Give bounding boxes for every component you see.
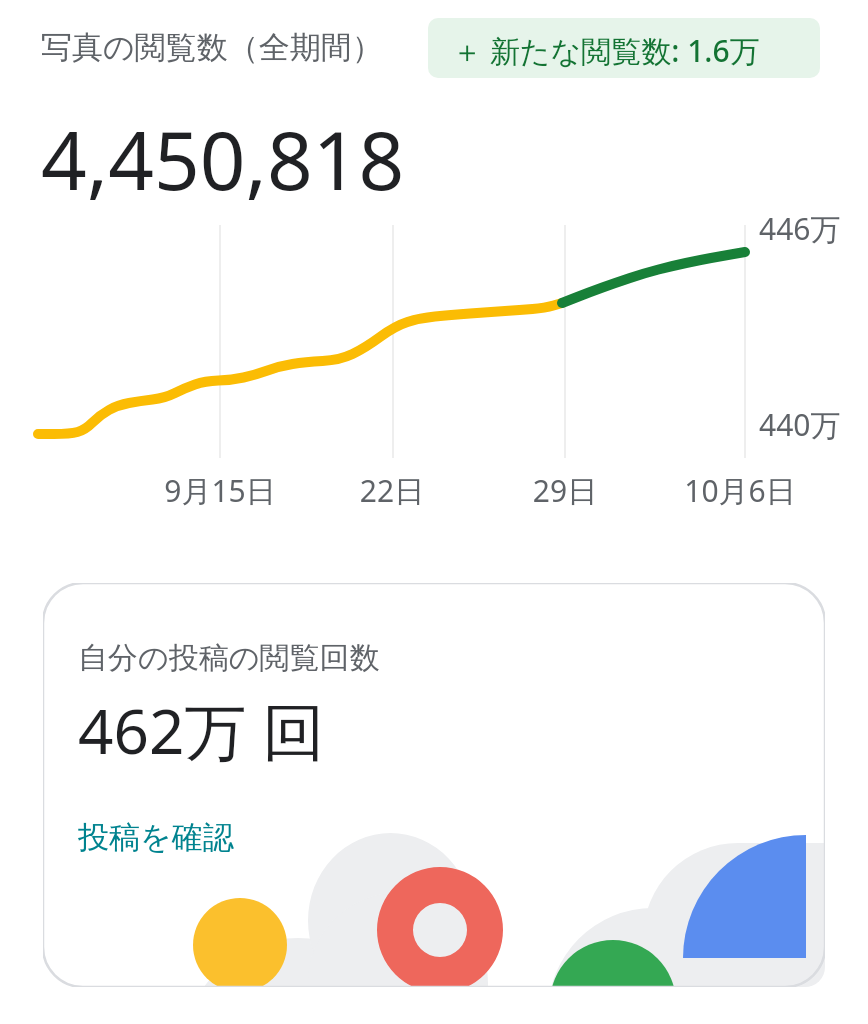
- staticText: ＋ 新たな閲覧数: 1.6万: [452, 30, 760, 71]
- staticText: 自分の投稿の閲覧回数: [78, 639, 380, 677]
- staticText: 9月15日: [130, 470, 310, 510]
- button[interactable]: 自分の投稿の閲覧回数: [43, 583, 825, 987]
- staticText: 22日: [302, 470, 482, 510]
- staticText: 投稿を確認: [78, 818, 234, 857]
- staticText: 440万: [759, 404, 841, 445]
- staticText: 10月6日: [650, 470, 830, 510]
- staticText: 446万: [759, 208, 841, 249]
- button[interactable]: 投稿を確認: [71, 813, 241, 862]
- staticText: 写真の閲覧数（全期間）: [41, 28, 383, 67]
- staticText: 462万 回: [78, 688, 325, 773]
- staticText: 29日: [475, 470, 655, 510]
- button[interactable]: ＋ 新たな閲覧数: 1.6万: [428, 18, 820, 78]
- staticText: 4,450,818: [41, 104, 405, 213]
